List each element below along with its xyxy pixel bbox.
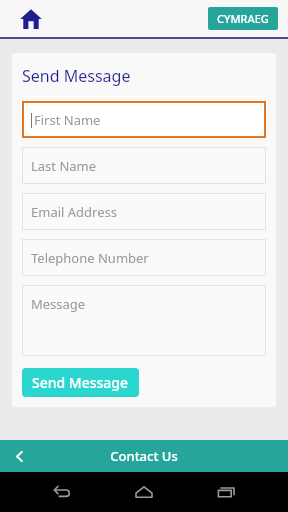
button[interactable]: Last Name: [22, 147, 266, 184]
button[interactable]: Back: [0, 440, 288, 472]
staticText: Last Name: [31, 157, 97, 175]
button[interactable]: Telephone Number: [22, 239, 266, 276]
button[interactable]: Message: [22, 285, 266, 356]
staticText: CYMRAEG: [217, 11, 269, 26]
staticText: First Name: [34, 111, 101, 129]
button[interactable]: Send Message: [22, 368, 139, 397]
button[interactable]: CYMRAEG: [208, 7, 278, 30]
button[interactable]: Home: [16, 4, 46, 34]
button[interactable]: Home: [124, 472, 164, 512]
staticText: Contact Us: [110, 447, 178, 465]
staticText: Message: [31, 295, 86, 313]
staticText: Send Message: [32, 373, 129, 392]
staticText: Send Message: [22, 65, 131, 87]
staticText: Telephone Number: [31, 249, 149, 267]
staticText: Email Address: [31, 203, 117, 221]
button[interactable]: Back: [6, 443, 32, 469]
button[interactable]: Recent apps: [206, 472, 246, 512]
button[interactable]: Email Address: [22, 193, 266, 230]
button[interactable]: Back: [42, 472, 82, 512]
button[interactable]: First Name: [22, 101, 266, 138]
